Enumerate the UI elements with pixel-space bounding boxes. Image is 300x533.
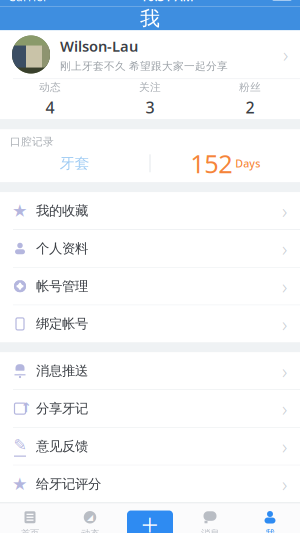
- staticText: 刚上牙套不久 希望跟大家一起分享: [60, 60, 228, 73]
- staticText: 4: [45, 97, 54, 118]
- button[interactable]: ↑: [0, 390, 300, 427]
- staticText: ◢: [87, 513, 93, 522]
- staticText: 意见反馈: [36, 438, 88, 454]
- staticText: 我: [140, 6, 160, 31]
- staticText: ★: [12, 474, 28, 494]
- staticText: Carrier: [8, 0, 48, 4]
- staticText: 关注: [139, 80, 161, 94]
- staticText: ›: [282, 471, 287, 497]
- staticText: ›: [282, 395, 287, 422]
- staticText: 10:31 AM: [140, 0, 193, 4]
- staticText: ↑: [20, 400, 31, 415]
- button[interactable]: 绑定帐号: [0, 305, 300, 342]
- staticText: ›: [282, 358, 287, 384]
- staticText: Wilson-Lau: [60, 36, 138, 56]
- staticText: 口腔记录: [10, 135, 54, 148]
- staticText: ›: [282, 197, 287, 224]
- button[interactable]: New post: [120, 502, 180, 533]
- staticText: 给牙记评分: [36, 476, 101, 492]
- staticText: 帐号管理: [36, 278, 88, 294]
- staticText: +: [141, 504, 159, 533]
- staticText: ›: [282, 273, 287, 299]
- button[interactable]: ◢: [60, 502, 120, 533]
- button[interactable]: 消息: [180, 502, 240, 533]
- button[interactable]: 牙套: [0, 148, 149, 178]
- button[interactable]: 152: [150, 148, 300, 178]
- staticText: 分享牙记: [36, 400, 88, 417]
- staticText: Days: [232, 156, 260, 170]
- button[interactable]: 消息推送: [0, 352, 300, 389]
- button[interactable]: ✎: [0, 428, 300, 465]
- staticText: 粉丝: [239, 80, 261, 94]
- staticText: ›: [283, 41, 288, 68]
- staticText: 动态: [39, 80, 61, 94]
- staticText: ›: [282, 311, 287, 337]
- staticText: ›: [282, 235, 287, 262]
- staticText: ›: [282, 433, 287, 460]
- staticText: 我的收藏: [36, 203, 88, 219]
- button[interactable]: ★: [0, 465, 300, 502]
- staticText: ★: [12, 201, 28, 221]
- staticText: 个人资料: [36, 240, 88, 257]
- staticText: 2: [245, 97, 254, 118]
- staticText: 消息: [201, 528, 219, 533]
- button[interactable]: 首页: [0, 502, 60, 533]
- staticText: 3: [145, 97, 154, 118]
- button[interactable]: 我: [240, 502, 300, 533]
- staticText: 消息推送: [36, 363, 88, 379]
- button[interactable]: 帐号管理: [0, 268, 300, 305]
- button[interactable]: Wilson-Lau: [0, 30, 300, 78]
- staticText: ✎: [13, 436, 26, 454]
- staticText: 绑定帐号: [36, 316, 88, 332]
- staticText: 152: [190, 146, 232, 180]
- staticText: 我: [265, 528, 274, 533]
- staticText: 首页: [21, 528, 39, 533]
- staticText: 动态: [81, 528, 99, 533]
- staticText: 牙套: [60, 154, 90, 172]
- button[interactable]: 个人资料: [0, 230, 300, 267]
- button[interactable]: ★: [0, 192, 300, 229]
